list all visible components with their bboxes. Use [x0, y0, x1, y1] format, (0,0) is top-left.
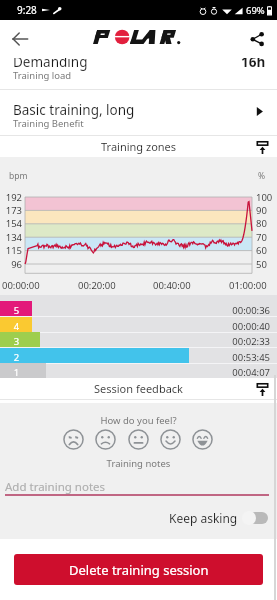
staticText: bpm — [9, 170, 28, 182]
button[interactable]: Demanding — [0, 58, 277, 89]
button[interactable]: 5 — [0, 301, 277, 317]
staticText: 4 — [8, 320, 25, 333]
staticText: Training Benefit — [13, 117, 84, 130]
staticText: 1 — [8, 366, 25, 379]
staticText: 90 — [256, 204, 267, 217]
button[interactable]: 4 — [0, 317, 277, 333]
staticText: 100 — [256, 191, 273, 204]
staticText: 69% — [246, 4, 265, 17]
staticText: % — [258, 170, 266, 182]
staticText: 00:00:40 — [200, 320, 270, 333]
staticText: 5 — [8, 304, 25, 317]
staticText: 60 — [256, 244, 267, 257]
button[interactable]: Feeling 1 — [63, 429, 84, 450]
staticText: Training zones — [101, 139, 177, 154]
staticText: How do you feel? — [0, 414, 277, 427]
staticText: Demanding — [13, 58, 88, 71]
button[interactable]: Feeling 2 — [95, 429, 116, 450]
staticText: 00:20:00 — [78, 279, 116, 292]
button[interactable]: Training zones — [0, 136, 277, 157]
button[interactable]: Session feedback — [0, 378, 277, 399]
button[interactable]: Keep asking — [169, 508, 268, 528]
button[interactable]: Add training notes — [5, 479, 269, 501]
staticText: 173 — [0, 204, 22, 217]
button[interactable]: Share — [241, 23, 273, 55]
button[interactable]: 2 — [0, 348, 277, 364]
button[interactable]: 1 — [0, 363, 277, 379]
button[interactable]: Delete training session — [14, 554, 263, 585]
staticText: 134 — [0, 231, 22, 244]
staticText: 115 — [0, 244, 22, 257]
staticText: 2 — [8, 351, 25, 364]
staticText: 50 — [256, 258, 267, 271]
button[interactable]: 3 — [0, 332, 277, 348]
staticText: Session feedback — [94, 381, 183, 396]
staticText: Training notes — [0, 457, 277, 470]
button[interactable]: Back — [4, 23, 36, 55]
staticText: 00:53:45 — [200, 351, 270, 364]
button[interactable]: Feeling 4 — [160, 429, 181, 450]
staticText: 9:28 — [17, 3, 37, 17]
button[interactable]: Feeling 3 — [128, 429, 149, 450]
staticText: Basic training, long — [13, 101, 135, 119]
staticText: 154 — [0, 217, 22, 230]
staticText: 00:02:33 — [200, 335, 270, 348]
staticText: 00:00:00 — [2, 279, 40, 292]
staticText: 00:00:36 — [200, 304, 270, 317]
staticText: 192 — [0, 191, 22, 204]
button[interactable]: Basic training, long — [0, 90, 277, 135]
other: Collapse section — [254, 139, 270, 155]
staticText: 3 — [8, 335, 25, 348]
staticText: Keep asking — [169, 510, 238, 526]
staticText: 70 — [256, 231, 267, 244]
staticText: Training load — [13, 69, 72, 82]
staticText: 16h — [241, 58, 266, 71]
staticText: 00:04:07 — [200, 366, 270, 379]
staticText: Delete training session — [69, 561, 209, 579]
staticText: 96 — [0, 258, 22, 271]
staticText: Add training notes — [5, 479, 106, 495]
staticText: 80 — [256, 217, 267, 230]
button[interactable]: Feeling 5 — [192, 429, 213, 450]
staticText: 00:40:00 — [153, 279, 191, 292]
staticText: 01:00:00 — [229, 279, 267, 292]
other: Collapse section — [254, 381, 270, 397]
